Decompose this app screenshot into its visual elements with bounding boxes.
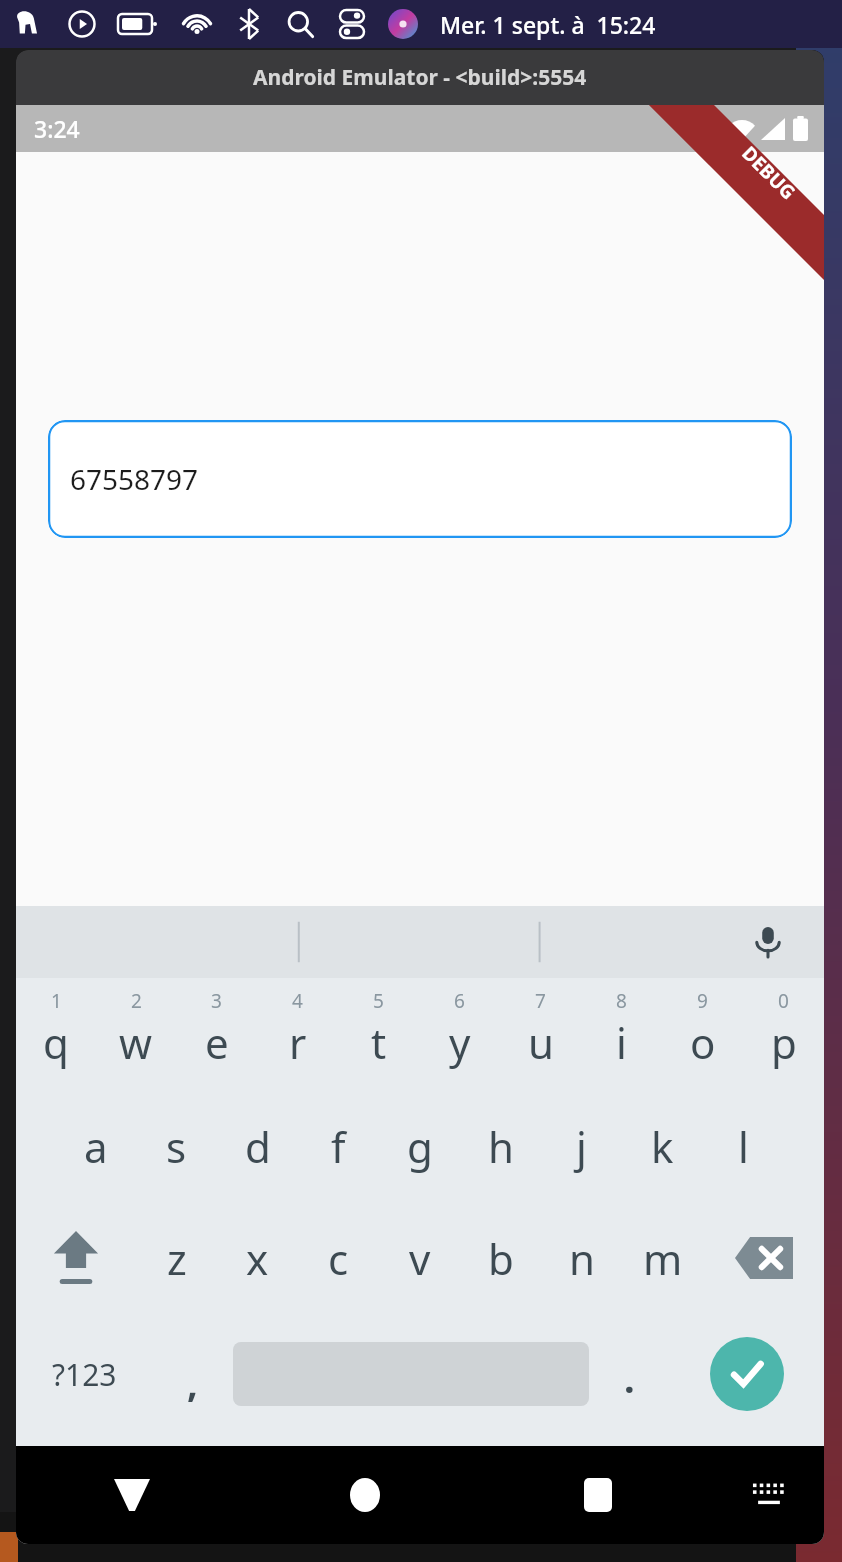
staticText: Mer. 1 sept. à 15:24 <box>440 9 656 40</box>
button[interactable]: f <box>298 1090 379 1202</box>
staticText: i <box>616 1014 627 1071</box>
button[interactable]: k <box>622 1090 703 1202</box>
button[interactable]: l <box>703 1090 784 1202</box>
staticText: z <box>167 1230 187 1287</box>
staticText: DEBUG <box>736 140 802 206</box>
staticText: Android Emulator - <build>:5554 <box>253 63 587 92</box>
staticText: g <box>407 1118 433 1175</box>
button[interactable]: 4 <box>257 978 338 1090</box>
staticText: q <box>43 1014 69 1071</box>
staticText: r <box>289 1014 307 1071</box>
staticText: . <box>624 1352 635 1404</box>
staticText: 1 <box>51 988 62 1014</box>
staticText: n <box>569 1230 595 1287</box>
button[interactable]: 3 <box>176 978 257 1090</box>
button[interactable]: Keyboard layout <box>714 1446 824 1544</box>
button[interactable]: n <box>541 1202 622 1314</box>
staticText: 5 <box>373 988 384 1014</box>
button[interactable]: g <box>379 1090 460 1202</box>
button[interactable]: Shift <box>16 1202 136 1314</box>
staticText: j <box>576 1118 587 1175</box>
button[interactable]: s <box>136 1090 217 1202</box>
button[interactable]: 2 <box>96 978 176 1090</box>
staticText: 4 <box>292 988 303 1014</box>
staticText: 3:24 <box>34 113 80 144</box>
button[interactable]: h <box>460 1090 541 1202</box>
button[interactable]: Voice input <box>742 916 794 968</box>
staticText: c <box>328 1230 349 1287</box>
staticText: h <box>488 1118 514 1175</box>
button[interactable]: 8 <box>581 978 662 1090</box>
staticText: o <box>690 1014 716 1071</box>
button[interactable]: d <box>217 1090 298 1202</box>
staticText: l <box>738 1118 749 1175</box>
button[interactable]: Home <box>248 1446 481 1544</box>
staticText: s <box>166 1118 187 1175</box>
staticText: a <box>84 1118 108 1175</box>
button[interactable]: 0 <box>743 978 824 1090</box>
staticText: , <box>187 1356 198 1408</box>
staticText: 2 <box>131 988 142 1014</box>
staticText: d <box>245 1118 271 1175</box>
button[interactable]: j <box>541 1090 622 1202</box>
staticText: 7 <box>535 988 546 1014</box>
button[interactable]: Backspace <box>703 1202 824 1314</box>
button[interactable]: 5 <box>338 978 419 1090</box>
staticText: 0 <box>778 988 789 1014</box>
button[interactable]: v <box>379 1202 460 1314</box>
staticText: m <box>643 1230 683 1287</box>
button[interactable]: b <box>460 1202 541 1314</box>
staticText: ?123 <box>52 1354 117 1395</box>
button[interactable]: x <box>217 1202 298 1314</box>
button[interactable]: c <box>298 1202 379 1314</box>
staticText: 8 <box>616 988 627 1014</box>
button[interactable]: z <box>136 1202 217 1314</box>
staticText: 9 <box>697 988 708 1014</box>
button[interactable]: Enter <box>670 1314 824 1434</box>
button[interactable]: 9 <box>662 978 743 1090</box>
staticText: 3 <box>211 988 222 1014</box>
staticText: w <box>119 1014 153 1071</box>
button[interactable]: 6 <box>419 978 500 1090</box>
staticText: v <box>409 1230 431 1287</box>
staticText: 6 <box>454 988 465 1014</box>
staticText: x <box>246 1230 269 1287</box>
button[interactable]: 7 <box>500 978 581 1090</box>
staticText: k <box>651 1118 674 1175</box>
staticText: b <box>488 1230 514 1287</box>
button[interactable]: . <box>589 1314 670 1434</box>
button[interactable]: , <box>152 1314 233 1434</box>
staticText: f <box>331 1118 346 1175</box>
button[interactable]: 67558797 <box>48 420 792 538</box>
button[interactable]: Hide keyboard <box>16 1446 248 1544</box>
staticText: t <box>371 1014 387 1071</box>
button[interactable]: m <box>622 1202 703 1314</box>
staticText: u <box>528 1014 554 1071</box>
staticText: p <box>771 1014 797 1071</box>
button[interactable]: Recents <box>481 1446 714 1544</box>
staticText: 67558797 <box>70 460 199 498</box>
button[interactable]: ?123 <box>16 1314 152 1434</box>
staticText: e <box>205 1014 229 1071</box>
button[interactable]: 1 <box>16 978 96 1090</box>
button[interactable]: a <box>55 1090 136 1202</box>
staticText: y <box>449 1014 471 1071</box>
